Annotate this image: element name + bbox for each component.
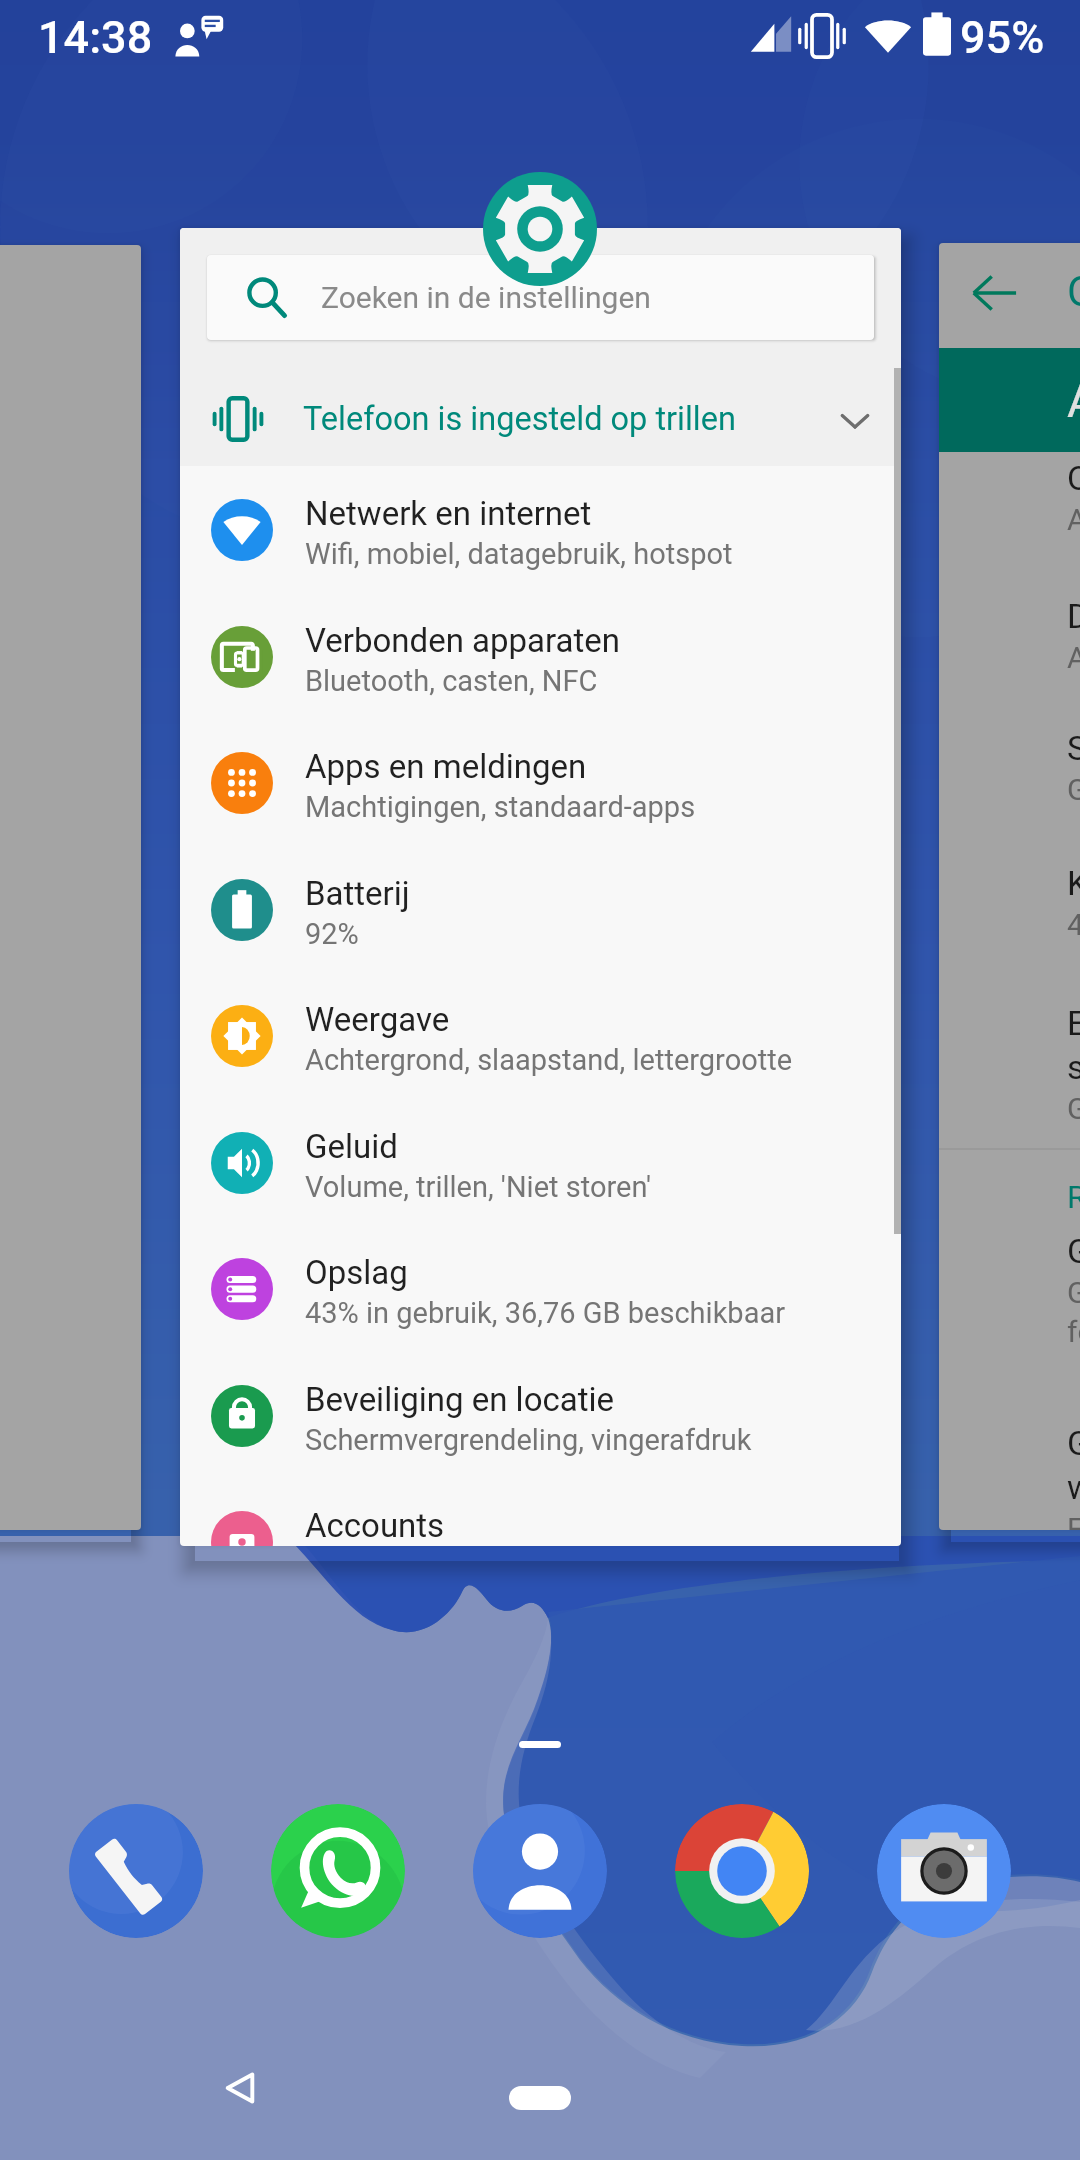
staticText: Algemeen [1067,374,1080,428]
staticText: Volume, trillen, 'Niet storen' [305,1170,651,1204]
staticText: Achtergrond, slaapstand, lettergrootte [305,1043,793,1077]
button[interactable]: Gegevens [1067,1423,1080,1530]
staticText: Opslag [305,1253,408,1292]
button[interactable]: Chrome [675,1804,809,1938]
button[interactable]: Phone [69,1804,203,1938]
staticText: 95% [960,11,1045,64]
button[interactable]: Batterij [180,846,901,973]
staticText: 43% in gebruik, 36,76 GB beschikbaar [305,1296,786,1330]
staticText: formaat [1067,1314,1080,1349]
staticText: Telefoon is ingesteld op trillen [303,400,736,438]
button[interactable]: Telefoon is ingesteld op trillen [180,372,901,466]
button[interactable]: Netwerk en internet [180,466,901,593]
staticText: Stijl [1067,728,1080,768]
staticText: Zoeken in de instellingen [321,280,651,315]
staticText: 14:38 [38,11,153,64]
button[interactable]: Back [212,2060,268,2116]
button[interactable]: Opslag [180,1225,901,1352]
staticText: Getallen [1067,1091,1080,1126]
button[interactable]: Kleurenschema [1067,863,1080,942]
button[interactable]: Verbonden apparaten [180,593,901,720]
staticText: Wifi, mobiel, datagebruik, hotspot [305,537,733,571]
staticText: 92% [305,917,359,951]
staticText: 41 kleuren [1067,907,1080,942]
staticText: Weergave [305,1000,450,1039]
button[interactable]: Grafieken [1067,1231,1080,1349]
staticText: Databron [1067,596,1080,636]
button[interactable]: Stijl [1067,728,1080,807]
button[interactable]: Geluid [180,1099,901,1226]
button[interactable]: Overzicht [1067,458,1080,537]
button[interactable]: Contacts [473,1804,607,1938]
staticText: Opties [1067,267,1080,316]
staticText: Bluetooth, casten, NFC [305,664,598,698]
staticText: Overzicht [1067,458,1080,498]
staticText: Filter [1067,1511,1080,1530]
staticText: Rapport [1067,1178,1080,1216]
button[interactable]: Settings [483,172,597,286]
button[interactable]: Accounts [180,1478,901,1546]
button[interactable]: WhatsApp [271,1804,405,1938]
staticText: Gegevens [1067,1275,1080,1310]
staticText: Grafieken [1067,1231,1080,1271]
staticText: Verbonden apparaten [305,621,621,660]
staticText: Netwerk en internet [305,494,592,533]
button[interactable]: Apps en meldingen [180,719,901,846]
staticText: Eenheden en [1067,1003,1080,1043]
button[interactable]: Back [971,270,1017,316]
staticText: Accounts [305,1506,445,1545]
button[interactable]: Back [939,243,1080,1530]
staticText: Algemeen [1067,640,1080,675]
staticText: Schermvergrendeling, vingerafdruk [305,1423,752,1457]
button[interactable]: Camera [877,1804,1011,1938]
staticText: Machtigingen, standaard-apps [305,790,696,824]
staticText: Automatisch [1067,502,1080,537]
staticText: sijstemen [1067,1047,1080,1087]
button[interactable]: Weergave [180,972,901,1099]
staticText: Apps en meldingen [305,747,587,786]
button[interactable]: Databron [1067,596,1080,675]
staticText: wijzigen [1067,1467,1080,1507]
staticText: Geluid [305,1127,398,1166]
button[interactable]: Eenheden en [1067,1003,1080,1126]
button[interactable]: Zoeken in de instellingen [207,255,874,340]
button[interactable]: Beveiliging en locatie [180,1352,901,1479]
staticText: Batterij [305,874,410,913]
staticText: Gegevens [1067,1423,1080,1463]
staticText: Kleurenschema [1067,863,1080,903]
staticText: Beveiliging en locatie [305,1380,614,1419]
staticText: Grafiek [1067,772,1080,807]
button[interactable]: Home [509,2086,571,2110]
